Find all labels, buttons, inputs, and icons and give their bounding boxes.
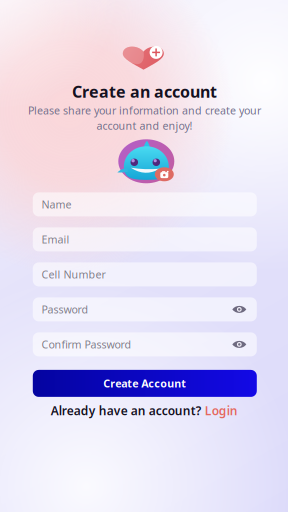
staticText: Please share your information and create…: [28, 103, 261, 117]
button[interactable]: Change profile photo: [155, 167, 174, 181]
staticText: Name: [41, 197, 71, 211]
staticText: account and enjoy!: [96, 118, 192, 133]
button[interactable]: Login: [205, 402, 238, 418]
button[interactable]: Create Account: [33, 370, 257, 397]
staticText: Confirm Password: [41, 337, 131, 351]
button[interactable]: Show Confirm Password: [224, 333, 246, 356]
staticText: Cell Number: [41, 267, 105, 281]
staticText: Create Account: [103, 376, 186, 390]
staticText: Create an account: [72, 81, 217, 102]
button[interactable]: Show Password: [224, 298, 246, 321]
staticText: Password: [41, 302, 88, 316]
staticText: Email: [41, 232, 69, 246]
staticText: Login: [205, 402, 238, 418]
staticText: Already have an account?: [51, 402, 202, 418]
